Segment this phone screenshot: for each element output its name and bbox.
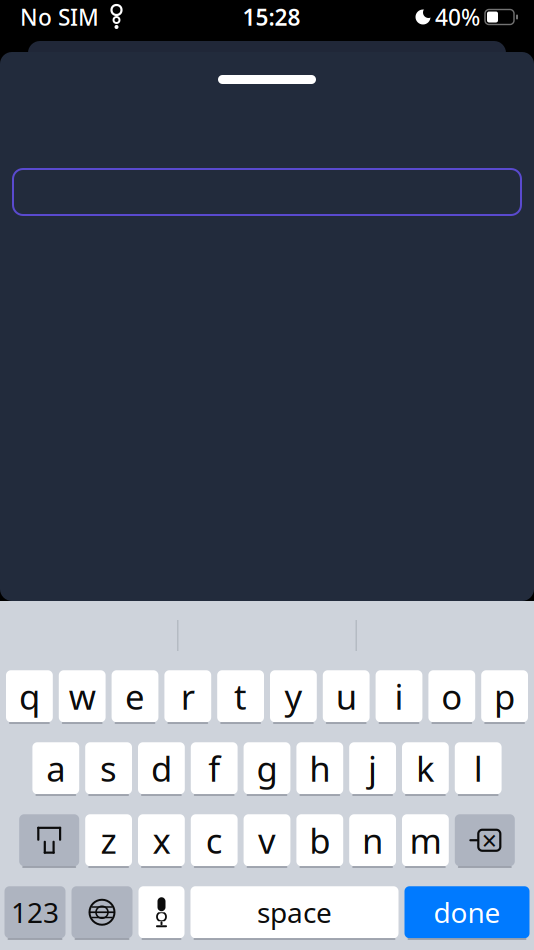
staticText: m [409, 817, 441, 863]
button[interactable]: e [112, 670, 158, 724]
staticText: g [256, 745, 277, 791]
staticText: i [394, 673, 403, 719]
button[interactable]: z [85, 814, 132, 868]
button[interactable]: w [59, 670, 106, 724]
staticText: d [151, 745, 172, 791]
staticText: o [441, 673, 462, 719]
button[interactable]: m [402, 814, 449, 868]
staticText: × [482, 822, 497, 858]
button[interactable]: h [296, 742, 343, 796]
button[interactable]: x [138, 814, 185, 868]
button[interactable]: k [402, 742, 449, 796]
button[interactable]: space [190, 886, 398, 940]
staticText: No SIM [20, 2, 99, 32]
button[interactable]: c [191, 814, 238, 868]
staticText: space [257, 894, 332, 931]
staticText: 123 [11, 894, 59, 931]
button[interactable]: Dictation [138, 886, 184, 940]
button[interactable] [0, 169, 534, 215]
button[interactable]: Next keyboard [71, 886, 132, 940]
staticText: h [309, 745, 330, 791]
button[interactable]: u [323, 670, 370, 724]
staticText: p [494, 673, 515, 719]
button[interactable]: b [296, 814, 343, 868]
button[interactable]: o [428, 670, 475, 724]
staticText: s [100, 745, 117, 791]
button[interactable]: t [217, 670, 264, 724]
button[interactable]: f [191, 742, 238, 796]
button[interactable]: s [85, 742, 132, 796]
staticText: v [258, 817, 276, 863]
staticText: r [181, 673, 195, 719]
staticText: f [208, 745, 220, 791]
staticText: a [46, 745, 65, 791]
staticText: t [234, 673, 247, 719]
staticText: k [416, 745, 435, 791]
button[interactable]: Shift [19, 814, 79, 868]
button[interactable]: n [349, 814, 396, 868]
staticText: w [69, 673, 96, 719]
staticText: j [368, 745, 377, 791]
staticText: 15:28 [242, 2, 300, 32]
staticText: x [152, 817, 170, 863]
button[interactable]: g [244, 742, 290, 796]
staticText: e [125, 673, 145, 719]
staticText: q [19, 673, 40, 719]
staticText: 40% [435, 2, 480, 32]
button[interactable]: v [244, 814, 290, 868]
button[interactable]: q [6, 670, 53, 724]
staticText: z [101, 817, 117, 863]
button[interactable]: i [376, 670, 422, 724]
staticText: y [284, 673, 302, 719]
button[interactable]: 123 [4, 886, 65, 940]
button[interactable]: l [455, 742, 502, 796]
button[interactable]: Delete [455, 814, 515, 868]
button[interactable]: j [349, 742, 396, 796]
staticText: n [362, 817, 383, 863]
button[interactable]: y [270, 670, 317, 724]
button[interactable]: a [32, 742, 79, 796]
button[interactable]: d [138, 742, 185, 796]
staticText: done [433, 894, 500, 931]
staticText: b [309, 817, 330, 863]
button[interactable]: r [164, 670, 211, 724]
button[interactable]: p [481, 670, 528, 724]
staticText: c [206, 817, 223, 863]
staticText: u [336, 673, 357, 719]
staticText: l [474, 745, 483, 791]
button[interactable]: done [404, 886, 529, 940]
